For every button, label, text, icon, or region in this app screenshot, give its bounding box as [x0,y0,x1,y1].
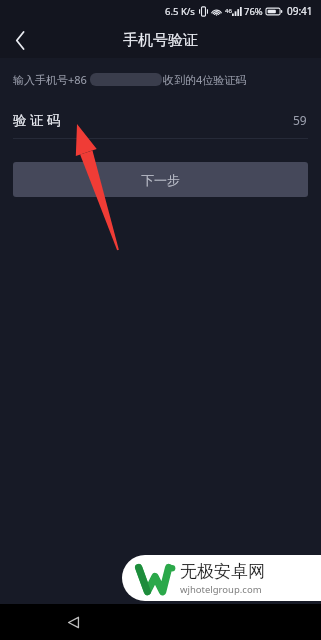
button[interactable]: 验 证 码 [0,102,321,138]
staticText: 6.5 K/s [165,5,195,18]
staticText: 下一步 [141,172,180,188]
staticText: 无极安卓网 [180,561,265,582]
staticText: 输入手机号+86 [13,72,87,87]
staticText: 验 证 码 [13,111,61,129]
button[interactable]: 下一步 [13,162,308,197]
staticText: 76% [244,5,263,18]
button[interactable]: Back [0,22,40,58]
button[interactable]: Back [55,604,91,640]
staticText: 收到的4位验证码 [163,72,247,87]
staticText: 59 [293,112,307,128]
staticText: 09:41 [287,4,313,18]
staticText: 46 [225,7,232,15]
staticText: 手机号验证 [123,31,198,50]
staticText: wjhotelgroup.com [180,583,262,596]
